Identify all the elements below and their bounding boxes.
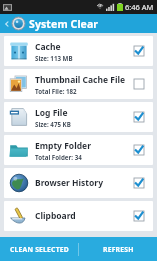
staticText: Browser History xyxy=(35,177,104,189)
staticText: CLEAN SELECTED xyxy=(10,245,69,254)
button[interactable]: Not selected xyxy=(130,75,148,93)
button[interactable]: Selected xyxy=(130,174,148,192)
button[interactable]: Thumbnail Cache File xyxy=(4,69,153,99)
staticText: Empty Folder xyxy=(35,140,91,152)
staticText: REFRESH xyxy=(103,245,134,254)
button[interactable]: REFRESH xyxy=(79,237,157,261)
staticText: Total File: 182 xyxy=(35,87,77,95)
staticText: 6:46 AM xyxy=(125,2,154,12)
button[interactable]: Selected xyxy=(130,207,148,225)
button[interactable]: Empty Folder xyxy=(4,135,153,165)
button[interactable]: Selected xyxy=(130,42,148,60)
button[interactable]: Back xyxy=(0,14,157,33)
button[interactable]: CLEAN SELECTED xyxy=(0,237,78,261)
staticText: Size: 113 MB xyxy=(35,54,73,62)
staticText: Cache xyxy=(35,41,61,53)
staticText: System Clear xyxy=(29,17,99,31)
other: Back xyxy=(3,20,11,28)
button[interactable]: Cache xyxy=(4,36,153,66)
staticText: Thumbnail Cache File xyxy=(35,74,126,86)
staticText: Size: 475 KB xyxy=(35,120,71,128)
button[interactable]: Selected xyxy=(130,141,148,159)
staticText: Clipboard xyxy=(35,210,76,222)
button[interactable]: Clipboard xyxy=(4,201,153,231)
button[interactable]: Selected xyxy=(130,108,148,126)
staticText: Log File xyxy=(35,107,68,119)
button[interactable]: Log File xyxy=(4,102,153,132)
button[interactable]: Browser History xyxy=(4,168,153,198)
staticText: Total Folder: 34 xyxy=(35,153,82,161)
